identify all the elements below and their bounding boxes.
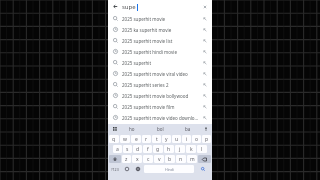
button[interactable]: z bbox=[122, 155, 131, 163]
staticText: h bbox=[167, 146, 171, 153]
button[interactable]: x bbox=[132, 155, 142, 163]
staticText: m bbox=[190, 156, 195, 163]
button[interactable]: y bbox=[162, 135, 171, 143]
button[interactable]: r bbox=[142, 135, 151, 143]
button[interactable]: Space bbox=[144, 165, 194, 173]
staticText: v bbox=[158, 156, 161, 163]
button[interactable]: j bbox=[175, 145, 185, 153]
button[interactable]: bol bbox=[146, 124, 174, 133]
button[interactable]: w bbox=[120, 135, 130, 143]
staticText: 2025 superhit hindi movie bbox=[122, 49, 199, 55]
button[interactable]: b bbox=[165, 155, 175, 163]
staticText: k bbox=[190, 146, 193, 153]
staticText: Hindi bbox=[165, 167, 174, 172]
button[interactable]: ?123 bbox=[109, 165, 121, 173]
button[interactable]: o bbox=[192, 135, 201, 143]
button[interactable]: m bbox=[187, 155, 197, 163]
button[interactable]: 2025 superhit movie bbox=[108, 13, 212, 24]
button[interactable]: Insert suggestion bbox=[201, 59, 208, 66]
staticText: y bbox=[165, 136, 168, 143]
button[interactable]: 2025 superhit movie viral video bbox=[108, 68, 212, 79]
button[interactable]: c bbox=[143, 155, 153, 163]
staticText: 2025 superhit movie bollywood bbox=[122, 93, 199, 99]
button[interactable]: Voice input bbox=[202, 125, 209, 132]
staticText: x bbox=[136, 156, 139, 163]
button[interactable]: Emoji bbox=[122, 165, 132, 173]
staticText: f bbox=[147, 146, 149, 153]
button[interactable]: 2025 superhit hindi movie bbox=[108, 46, 212, 57]
staticText: r bbox=[145, 136, 148, 143]
button[interactable]: Insert suggestion bbox=[201, 48, 208, 55]
button[interactable]: d bbox=[133, 145, 142, 153]
staticText: ho bbox=[129, 126, 135, 132]
button[interactable]: Insert suggestion bbox=[201, 37, 208, 44]
staticText: j bbox=[179, 146, 181, 153]
button[interactable]: 2025 ka superhit movie bbox=[108, 24, 212, 35]
button[interactable]: 2025 superhit movie bollywood bbox=[108, 90, 212, 101]
button[interactable]: g bbox=[153, 145, 163, 153]
button[interactable]: Shift bbox=[109, 155, 121, 163]
staticText: z bbox=[125, 156, 128, 163]
button[interactable]: t bbox=[152, 135, 161, 143]
button[interactable]: Backspace bbox=[198, 155, 211, 163]
button[interactable]: v bbox=[154, 155, 164, 163]
staticText: u bbox=[175, 136, 179, 143]
button[interactable]: Insert suggestion bbox=[201, 70, 208, 77]
button[interactable]: ho bbox=[118, 124, 146, 133]
button[interactable]: k bbox=[186, 145, 196, 153]
button[interactable]: Insert suggestion bbox=[201, 114, 208, 121]
button[interactable]: Search bbox=[195, 165, 211, 173]
staticText: 2025 superhit movie film bbox=[122, 104, 199, 110]
staticText: 2025 superhit movie viral video bbox=[122, 71, 199, 77]
staticText: c bbox=[147, 156, 150, 163]
button[interactable]: e bbox=[131, 135, 141, 143]
button[interactable]: Insert suggestion bbox=[201, 15, 208, 22]
staticText: n bbox=[179, 156, 183, 163]
button[interactable]: a bbox=[113, 145, 122, 153]
button[interactable]: ba bbox=[174, 124, 202, 133]
staticText: supe bbox=[122, 3, 136, 11]
button[interactable]: Change language bbox=[133, 165, 143, 173]
button[interactable]: p bbox=[202, 135, 211, 143]
button[interactable]: u bbox=[172, 135, 181, 143]
button[interactable]: Keyboard tools bbox=[111, 125, 118, 132]
staticText: o bbox=[195, 136, 199, 143]
staticText: a bbox=[116, 146, 119, 153]
button[interactable]: 2025 superhit movie film bbox=[108, 101, 212, 112]
button[interactable]: h bbox=[164, 145, 174, 153]
staticText: g bbox=[156, 146, 160, 153]
staticText: e bbox=[135, 136, 138, 143]
staticText: 2025 superhit movie list bbox=[122, 38, 199, 44]
staticText: q bbox=[112, 136, 116, 143]
button[interactable]: 2025 superhit bbox=[108, 57, 212, 68]
button[interactable]: Insert suggestion bbox=[201, 92, 208, 99]
button[interactable]: f bbox=[143, 145, 152, 153]
button[interactable]: Clear query bbox=[200, 2, 209, 11]
button[interactable]: Insert suggestion bbox=[201, 81, 208, 88]
staticText: t bbox=[156, 136, 158, 143]
staticText: 2025 ka superhit movie bbox=[122, 27, 199, 33]
staticText: 2025 superhit movie video download bbox=[122, 115, 199, 121]
button[interactable]: Back bbox=[111, 2, 120, 11]
button[interactable]: Insert suggestion bbox=[201, 26, 208, 33]
staticText: bol bbox=[157, 126, 164, 132]
button[interactable]: s bbox=[123, 145, 132, 153]
staticText: d bbox=[136, 146, 140, 153]
button[interactable]: q bbox=[109, 135, 119, 143]
staticText: b bbox=[168, 156, 172, 163]
staticText: 2025 superhit series 2 bbox=[122, 82, 199, 88]
staticText: 2025 superhit bbox=[122, 60, 199, 66]
button[interactable]: 2025 superhit movie video download bbox=[108, 112, 212, 123]
button[interactable]: i bbox=[182, 135, 191, 143]
button[interactable]: l bbox=[197, 145, 207, 153]
staticText: w bbox=[123, 136, 127, 143]
staticText: ba bbox=[185, 126, 191, 132]
button[interactable]: n bbox=[176, 155, 186, 163]
button[interactable]: Insert suggestion bbox=[201, 103, 208, 110]
staticText: 2025 superhit movie bbox=[122, 16, 199, 22]
staticText: s bbox=[126, 146, 129, 153]
staticText: i bbox=[186, 136, 188, 143]
button[interactable]: 2025 superhit series 2 bbox=[108, 79, 212, 90]
button[interactable]: 2025 superhit movie list bbox=[108, 35, 212, 46]
staticText: l bbox=[201, 146, 203, 153]
